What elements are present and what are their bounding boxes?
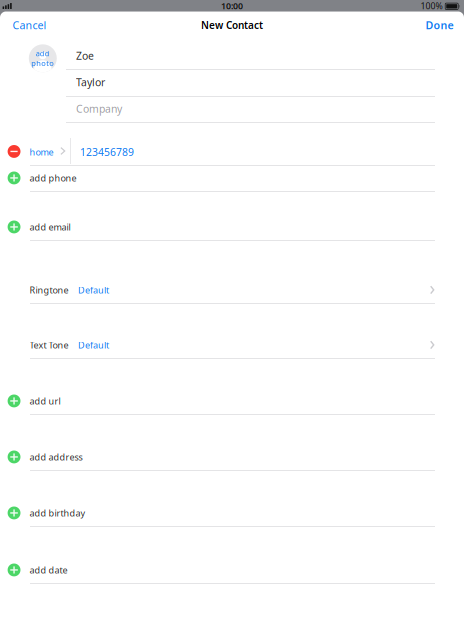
button[interactable]: add address [0, 0, 464, 618]
button[interactable]: add date [0, 0, 464, 618]
staticText: Ringtone [29, 284, 68, 296]
button[interactable]: Done [0, 0, 464, 618]
staticText: 10:00 [221, 0, 243, 12]
staticText: add phone [29, 172, 76, 184]
staticText: New Contact [201, 18, 263, 32]
button[interactable]: Text Tone [0, 0, 464, 618]
button[interactable]: add url [0, 0, 464, 618]
staticText: add address [29, 451, 82, 463]
staticText: photo [31, 58, 54, 68]
button[interactable]: Cancel [0, 0, 464, 618]
staticText: Zoe [76, 49, 94, 63]
button[interactable]: Taylor [0, 0, 464, 618]
staticText: add date [29, 564, 67, 576]
button[interactable]: Company [0, 0, 464, 618]
staticText: Default [78, 339, 109, 351]
button[interactable]: add email [0, 0, 464, 618]
staticText: 100% [420, 0, 442, 12]
staticText: Done [425, 18, 453, 32]
staticText: add url [29, 395, 60, 407]
staticText: add email [29, 221, 70, 233]
staticText: Cancel [12, 18, 46, 32]
button[interactable]: add birthday [0, 0, 464, 618]
staticText: Taylor [76, 75, 105, 89]
staticText: add [36, 48, 50, 59]
staticText: home [29, 146, 53, 158]
staticText: Company [76, 102, 122, 116]
staticText: Default [78, 284, 109, 296]
staticText: 123456789 [80, 145, 134, 159]
button[interactable]: Zoe [0, 0, 464, 618]
button[interactable]: Ringtone [0, 0, 464, 618]
staticText: Text Tone [29, 339, 68, 351]
button[interactable]: add phone [0, 0, 464, 618]
staticText: add birthday [29, 507, 85, 519]
button[interactable]: home [0, 0, 464, 618]
button[interactable]: Add photo [0, 0, 464, 618]
